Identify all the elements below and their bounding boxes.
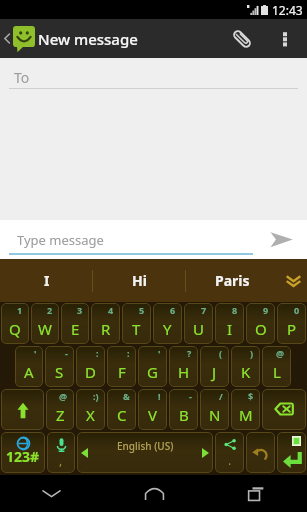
staticText: - bbox=[65, 347, 68, 359]
staticText: 12:43 bbox=[272, 2, 303, 18]
staticText: G bbox=[147, 362, 158, 382]
staticText: I bbox=[227, 319, 233, 339]
button[interactable]: & bbox=[107, 389, 136, 430]
button[interactable]: Hi bbox=[93, 259, 186, 302]
button[interactable]: - bbox=[45, 346, 74, 387]
button[interactable]: Paris bbox=[186, 259, 279, 302]
button[interactable]: @ bbox=[262, 346, 291, 387]
staticText: : bbox=[127, 347, 130, 359]
staticText: E bbox=[71, 319, 80, 339]
button[interactable]: 6 bbox=[153, 303, 182, 344]
staticText: N bbox=[209, 405, 221, 425]
staticText: M bbox=[239, 405, 253, 425]
button[interactable]: / bbox=[200, 389, 229, 430]
staticText: Type message bbox=[17, 231, 104, 249]
staticText: 3 bbox=[77, 304, 83, 316]
button[interactable]: ! bbox=[138, 389, 167, 430]
staticText: Z bbox=[56, 405, 65, 425]
button[interactable]: Back bbox=[0, 475, 103, 512]
staticText: I bbox=[44, 271, 50, 290]
button[interactable]: Navigate up bbox=[0, 19, 38, 58]
button[interactable]: 1 bbox=[1, 303, 29, 344]
staticText: ' bbox=[158, 347, 161, 359]
staticText: : bbox=[96, 347, 99, 359]
staticText: Hi bbox=[132, 271, 147, 290]
button[interactable]: Type message bbox=[0, 220, 255, 259]
staticText: ( bbox=[219, 347, 223, 359]
button[interactable]: - bbox=[169, 389, 198, 430]
button[interactable]: :) bbox=[76, 389, 105, 430]
button[interactable]: Undo bbox=[246, 432, 275, 473]
button[interactable]: ? bbox=[169, 346, 198, 387]
staticText: ? bbox=[187, 347, 192, 359]
staticText: 4 bbox=[108, 304, 114, 316]
button[interactable]: 0 bbox=[277, 303, 306, 344]
staticText: ! bbox=[158, 390, 161, 402]
button[interactable]: 5 bbox=[122, 303, 151, 344]
staticText: - bbox=[189, 390, 192, 402]
button[interactable]: 8 bbox=[215, 303, 244, 344]
staticText: ) bbox=[250, 347, 254, 359]
staticText: Q bbox=[9, 319, 21, 339]
button[interactable]: ( bbox=[200, 346, 229, 387]
button[interactable]: @ bbox=[46, 389, 74, 430]
button[interactable]: Backspace bbox=[262, 389, 306, 430]
staticText: 9 bbox=[263, 304, 269, 316]
button[interactable]: Symbols bbox=[1, 432, 45, 473]
button[interactable]: Share bbox=[215, 432, 244, 473]
button[interactable]: English (US) bbox=[77, 432, 213, 473]
button[interactable]: Home bbox=[103, 475, 205, 512]
staticText: F bbox=[118, 362, 126, 382]
button[interactable]: 9 bbox=[246, 303, 275, 344]
staticText: P bbox=[287, 319, 297, 339]
button[interactable]: Voice input bbox=[47, 432, 75, 473]
staticText: @ bbox=[59, 390, 68, 402]
button[interactable]: Shift bbox=[1, 389, 44, 430]
staticText: 0 bbox=[294, 304, 300, 316]
staticText: Paris bbox=[215, 271, 250, 290]
button[interactable]: I bbox=[0, 259, 93, 302]
staticText: $ bbox=[248, 390, 254, 402]
button[interactable]: More suggestions bbox=[279, 259, 307, 302]
staticText: 7 bbox=[201, 304, 207, 316]
staticText: A bbox=[24, 362, 34, 382]
staticText: 123# bbox=[6, 447, 40, 466]
button[interactable]: ' bbox=[138, 346, 167, 387]
staticText: L bbox=[273, 362, 281, 382]
staticText: T bbox=[132, 319, 141, 339]
staticText: 6 bbox=[170, 304, 176, 316]
staticText: V bbox=[148, 405, 158, 425]
button[interactable]: ) bbox=[231, 346, 260, 387]
button[interactable]: $ bbox=[231, 389, 260, 430]
button[interactable]: : bbox=[76, 346, 105, 387]
staticText: D bbox=[85, 362, 96, 382]
staticText: @ bbox=[276, 347, 285, 359]
button[interactable]: To bbox=[0, 58, 307, 100]
staticText: To bbox=[14, 68, 30, 87]
staticText: S bbox=[55, 362, 64, 382]
staticText: 2 bbox=[47, 304, 53, 316]
staticText: J bbox=[212, 362, 217, 382]
button[interactable]: 4 bbox=[91, 303, 120, 344]
button[interactable]: Send bbox=[255, 220, 307, 259]
button[interactable]: Recents bbox=[205, 475, 307, 512]
button[interactable]: 2 bbox=[31, 303, 59, 344]
staticText: C bbox=[117, 405, 127, 425]
staticText: , bbox=[59, 452, 63, 468]
button[interactable]: 3 bbox=[61, 303, 89, 344]
staticText: :) bbox=[93, 390, 99, 402]
button[interactable]: ' bbox=[15, 346, 43, 387]
button[interactable]: : bbox=[107, 346, 136, 387]
staticText: Y bbox=[163, 319, 172, 339]
button[interactable]: Enter bbox=[277, 432, 306, 473]
button[interactable]: 7 bbox=[184, 303, 213, 344]
staticText: O bbox=[255, 319, 267, 339]
staticText: & bbox=[123, 390, 130, 402]
button[interactable]: Attach bbox=[221, 19, 263, 58]
staticText: English (US) bbox=[117, 439, 174, 453]
staticText: New message bbox=[38, 29, 138, 49]
button[interactable]: More options bbox=[263, 19, 307, 58]
staticText: ' bbox=[34, 347, 37, 359]
staticText: R bbox=[101, 319, 111, 339]
staticText: . bbox=[228, 452, 232, 468]
